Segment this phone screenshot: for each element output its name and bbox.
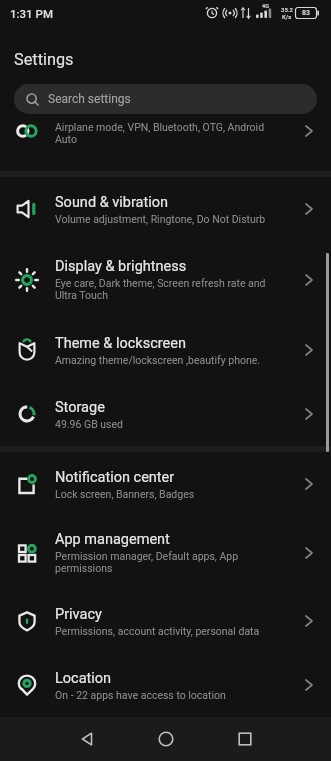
button[interactable]: Privacy — [0, 589, 331, 653]
button[interactable]: Airplane mode, VPN, Bluetooth, OTG, Andr… — [0, 117, 331, 171]
staticText: Permissions, account activity, personal … — [55, 625, 260, 637]
staticText: Theme & lockscreen — [55, 335, 186, 352]
button[interactable]: App management — [0, 516, 331, 589]
staticText: Notification center — [55, 469, 175, 486]
staticText: Amazing theme/lockscreen ,beautify phone… — [55, 354, 261, 366]
staticText: App management — [55, 531, 170, 548]
staticText: Location — [55, 670, 112, 687]
button[interactable]: Location — [0, 653, 331, 717]
staticText: Permission manager, Default apps, App pe… — [55, 550, 239, 575]
button[interactable]: Notification center — [0, 452, 331, 516]
staticText: Storage — [55, 399, 105, 416]
button[interactable]: Storage — [0, 382, 331, 446]
staticText: 49.96 GB used — [55, 418, 123, 430]
staticText: Eye care, Dark theme, Screen refresh rat… — [55, 277, 266, 302]
staticText: Display & brightness — [55, 258, 187, 275]
button[interactable] — [126, 717, 206, 761]
staticText: 1:31 PM — [10, 7, 53, 20]
button[interactable] — [206, 717, 284, 761]
staticText: On - 22 apps have access to location — [55, 689, 226, 701]
staticText: Privacy — [55, 606, 102, 623]
staticText: 83 — [302, 9, 310, 17]
staticText: Airplane mode, VPN, Bluetooth, OTG, Andr… — [55, 121, 265, 146]
staticText: Sound & vibration — [55, 194, 169, 211]
button[interactable]: Display & brightness — [0, 241, 331, 318]
button[interactable]: Theme & lockscreen — [0, 318, 331, 382]
staticText: 35.2 — [281, 6, 293, 13]
staticText: Search settings — [48, 92, 131, 106]
staticText: Settings — [14, 50, 74, 69]
button[interactable]: Sound & vibration — [0, 177, 331, 241]
staticText: 4G — [262, 3, 269, 9]
staticText: Volume adjustment, Ringtone, Do Not Dist… — [55, 213, 266, 225]
button[interactable]: Search settings — [14, 84, 317, 114]
staticText: K/s — [282, 13, 292, 20]
button[interactable] — [48, 717, 126, 761]
staticText: Lock screen, Banners, Badges — [55, 488, 195, 500]
